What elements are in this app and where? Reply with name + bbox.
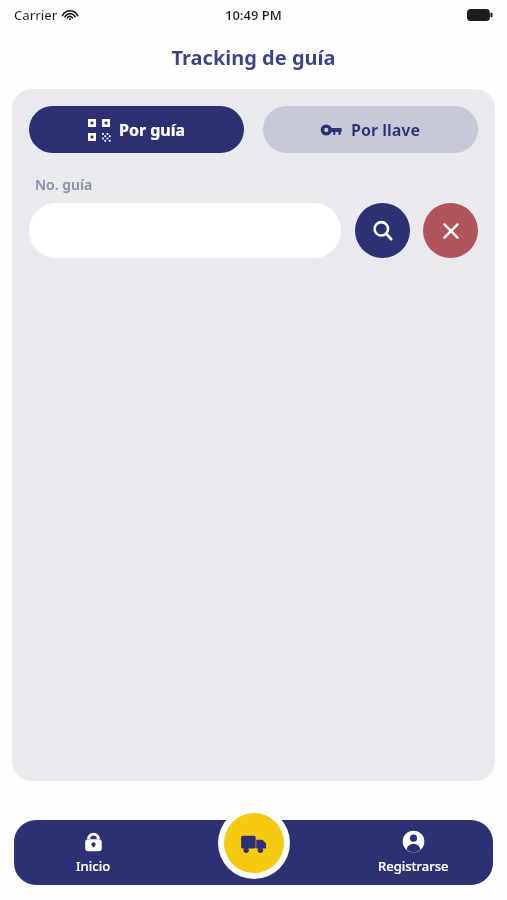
button[interactable]: Rastreo de envío <box>224 813 284 873</box>
button[interactable]: Buscar <box>355 203 410 258</box>
staticText: Por llave <box>351 119 421 141</box>
staticText: Tracking de guía <box>0 44 507 71</box>
staticText: No. guía <box>35 175 93 194</box>
button[interactable] <box>29 203 341 258</box>
staticText: Inicio <box>76 857 111 875</box>
button[interactable]: Inicio <box>14 820 173 885</box>
button[interactable]: Limpiar <box>423 203 478 258</box>
button[interactable]: Por llave <box>263 106 478 153</box>
staticText: Por guía <box>119 119 186 141</box>
button[interactable]: Por guía <box>29 106 244 153</box>
staticText: Registrarse <box>378 857 449 875</box>
button[interactable]: Registrarse <box>333 820 493 885</box>
staticText: 10:49 PM <box>225 6 282 24</box>
staticText: Carrier <box>14 6 58 24</box>
